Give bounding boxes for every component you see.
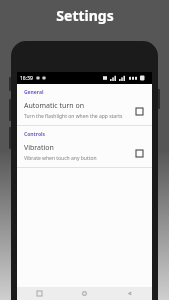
staticText: Automatic turn on — [24, 101, 84, 111]
button[interactable]: Automatic turn on — [17, 98, 152, 125]
button[interactable]: Back — [107, 287, 152, 300]
staticText: Vibration — [24, 143, 54, 153]
button[interactable]: Automatic turn on — [132, 104, 146, 118]
staticText: Controls — [24, 131, 46, 138]
button[interactable]: Vibration — [132, 146, 146, 160]
staticText: Vibrate when touch any button — [24, 155, 97, 162]
button[interactable]: Home — [62, 287, 107, 300]
button[interactable]: Recent apps — [17, 287, 62, 300]
staticText: Turn the flashlight on when the app star… — [24, 113, 123, 120]
button[interactable]: Vibration — [17, 140, 152, 167]
staticText: Settings — [56, 6, 114, 25]
staticText: 16:39 — [20, 75, 33, 82]
staticText: General — [24, 89, 44, 96]
